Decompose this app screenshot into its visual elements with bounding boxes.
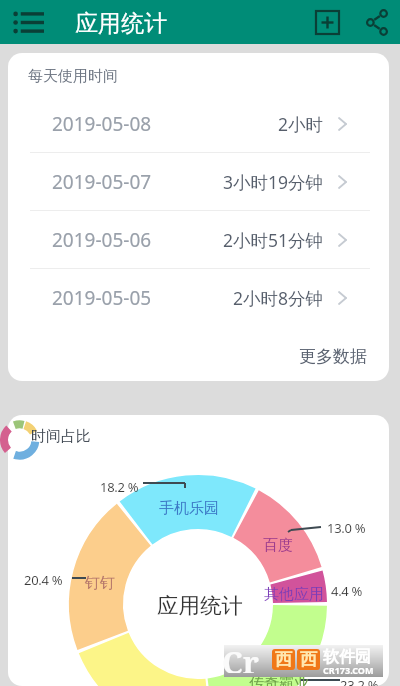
button[interactable]: 更多数据 bbox=[299, 346, 389, 381]
staticText: 更多数据 bbox=[299, 346, 367, 367]
staticText: 2小时8分钟 bbox=[233, 286, 324, 310]
staticText: 4.4 % bbox=[331, 582, 363, 600]
staticText: 百度 bbox=[263, 536, 293, 555]
staticText: 23.2 % bbox=[340, 676, 379, 686]
staticText: 钉钉 bbox=[85, 574, 115, 593]
staticText: 每天使用时间 bbox=[28, 67, 118, 86]
staticText: 20.4 % bbox=[24, 571, 63, 589]
staticText: 软件园 bbox=[323, 647, 371, 667]
button[interactable]: Share bbox=[355, 0, 400, 44]
staticText: 西 bbox=[275, 649, 292, 670]
staticText: 应用统计 bbox=[75, 9, 167, 38]
staticText: 2019-05-08 bbox=[52, 111, 152, 137]
staticText: 手机乐园 bbox=[159, 499, 219, 518]
staticText: 时间占比 bbox=[31, 427, 91, 446]
button[interactable]: Menu bbox=[0, 0, 56, 44]
staticText: 2小时 bbox=[278, 112, 324, 136]
staticText: 传奇霸业 bbox=[249, 674, 309, 686]
button[interactable]: 2019-05-05 bbox=[8, 269, 389, 326]
button[interactable]: 2019-05-07 bbox=[8, 153, 389, 210]
button[interactable]: 2019-05-08 bbox=[8, 95, 389, 152]
button[interactable]: Add bbox=[299, 0, 355, 44]
staticText: 3小时19分钟 bbox=[223, 170, 324, 194]
staticText: 18.2 % bbox=[100, 478, 139, 496]
staticText: 其他应用 bbox=[264, 585, 324, 604]
staticText: 2019-05-05 bbox=[52, 285, 152, 311]
staticText: Cr bbox=[222, 641, 259, 673]
staticText: 西 bbox=[300, 649, 317, 670]
staticText: 13.0 % bbox=[327, 519, 366, 537]
staticText: CR173.COM bbox=[323, 664, 374, 676]
staticText: 2019-05-07 bbox=[52, 169, 152, 195]
button[interactable]: 2019-05-06 bbox=[8, 211, 389, 268]
staticText: 2019-05-06 bbox=[52, 227, 152, 253]
staticText: 2小时51分钟 bbox=[223, 228, 324, 252]
staticText: 应用统计 bbox=[157, 592, 243, 619]
